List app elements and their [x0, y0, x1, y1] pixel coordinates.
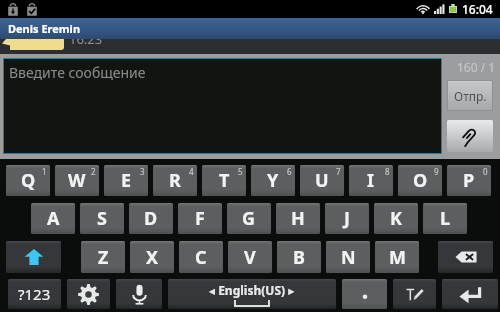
button[interactable] [342, 279, 387, 309]
staticText: B [293, 245, 305, 270]
button[interactable]: H [276, 203, 320, 234]
button[interactable]: F [178, 203, 222, 234]
button[interactable]: S [80, 203, 124, 234]
staticText: Denis Eremin [8, 21, 81, 36]
button[interactable]: G [227, 203, 271, 234]
button[interactable]: Space [168, 279, 336, 309]
button[interactable]: E [104, 165, 148, 196]
button[interactable]: ?123 [8, 279, 61, 309]
staticText: ◂ English(US) ▸ [209, 282, 295, 298]
staticText: 7 [336, 166, 341, 177]
button[interactable]: P [447, 165, 491, 196]
button[interactable]: U [300, 165, 344, 196]
staticText: S [97, 206, 107, 231]
staticText: M [389, 245, 406, 270]
staticText: G [242, 206, 256, 231]
button[interactable]: Q [6, 165, 50, 196]
staticText: 5 [238, 166, 243, 177]
button[interactable]: J [325, 203, 369, 234]
staticText: Введите сообщение [9, 63, 146, 82]
staticText: D [144, 206, 158, 231]
staticText: 4 [189, 166, 194, 177]
staticText: T [219, 168, 230, 193]
button[interactable]: D [129, 203, 173, 234]
staticText: 2 [91, 166, 96, 177]
button[interactable]: L [423, 203, 467, 234]
button[interactable]: Handwriting [393, 279, 436, 309]
staticText: L [440, 206, 451, 231]
button[interactable]: M [375, 241, 419, 273]
button[interactable]: T [202, 165, 246, 196]
staticText: C [195, 245, 207, 270]
staticText: 6 [287, 166, 292, 177]
button[interactable]: K [374, 203, 418, 234]
button[interactable]: V [228, 241, 272, 273]
staticText: A [47, 206, 60, 231]
staticText: Y [267, 168, 279, 193]
staticText: F [195, 206, 205, 231]
staticText: W [68, 168, 86, 193]
staticText: J [344, 206, 350, 231]
staticText: 9 [434, 166, 439, 177]
button[interactable]: Shift [6, 241, 61, 273]
staticText: H [291, 206, 305, 231]
staticText: 16:23 [69, 30, 103, 48]
staticText: P [463, 168, 475, 193]
button[interactable]: Отпр. [448, 81, 492, 110]
staticText: 8 [385, 166, 390, 177]
button[interactable]: Voice input [116, 279, 162, 309]
button[interactable]: Enter [442, 279, 498, 309]
button[interactable]: R [153, 165, 197, 196]
button[interactable]: Backspace [438, 241, 493, 273]
staticText: I [367, 168, 375, 193]
staticText: 3 [140, 166, 145, 177]
button[interactable]: Message input field [4, 59, 441, 153]
staticText: E [121, 168, 132, 193]
button[interactable]: X [130, 241, 174, 273]
button[interactable]: Attach file [447, 120, 493, 152]
staticText: K [390, 206, 402, 231]
staticText: ?123 [18, 284, 51, 304]
staticText: R [169, 168, 181, 193]
button[interactable]: I [349, 165, 393, 196]
staticText: O [413, 168, 428, 193]
staticText: 1 [42, 166, 47, 177]
button[interactable]: Y [251, 165, 295, 196]
button[interactable]: A [31, 203, 75, 234]
staticText: N [341, 245, 356, 270]
staticText: Отпр. [454, 88, 487, 104]
staticText: V [244, 245, 256, 270]
staticText: 160 / 1 [457, 59, 496, 75]
button[interactable]: O [398, 165, 442, 196]
button[interactable]: C [179, 241, 223, 273]
button[interactable]: Z [81, 241, 125, 273]
button[interactable]: N [326, 241, 370, 273]
staticText: Z [98, 245, 109, 270]
button[interactable]: Settings [67, 279, 110, 309]
staticText: 0 [483, 166, 488, 177]
button[interactable]: Denis Eremin [0, 18, 500, 39]
button[interactable]: B [277, 241, 321, 273]
button[interactable]: W [55, 165, 99, 196]
staticText: U [315, 168, 329, 193]
staticText: Q [21, 168, 36, 193]
staticText: X [146, 245, 159, 270]
staticText: 16:04 [462, 1, 493, 17]
